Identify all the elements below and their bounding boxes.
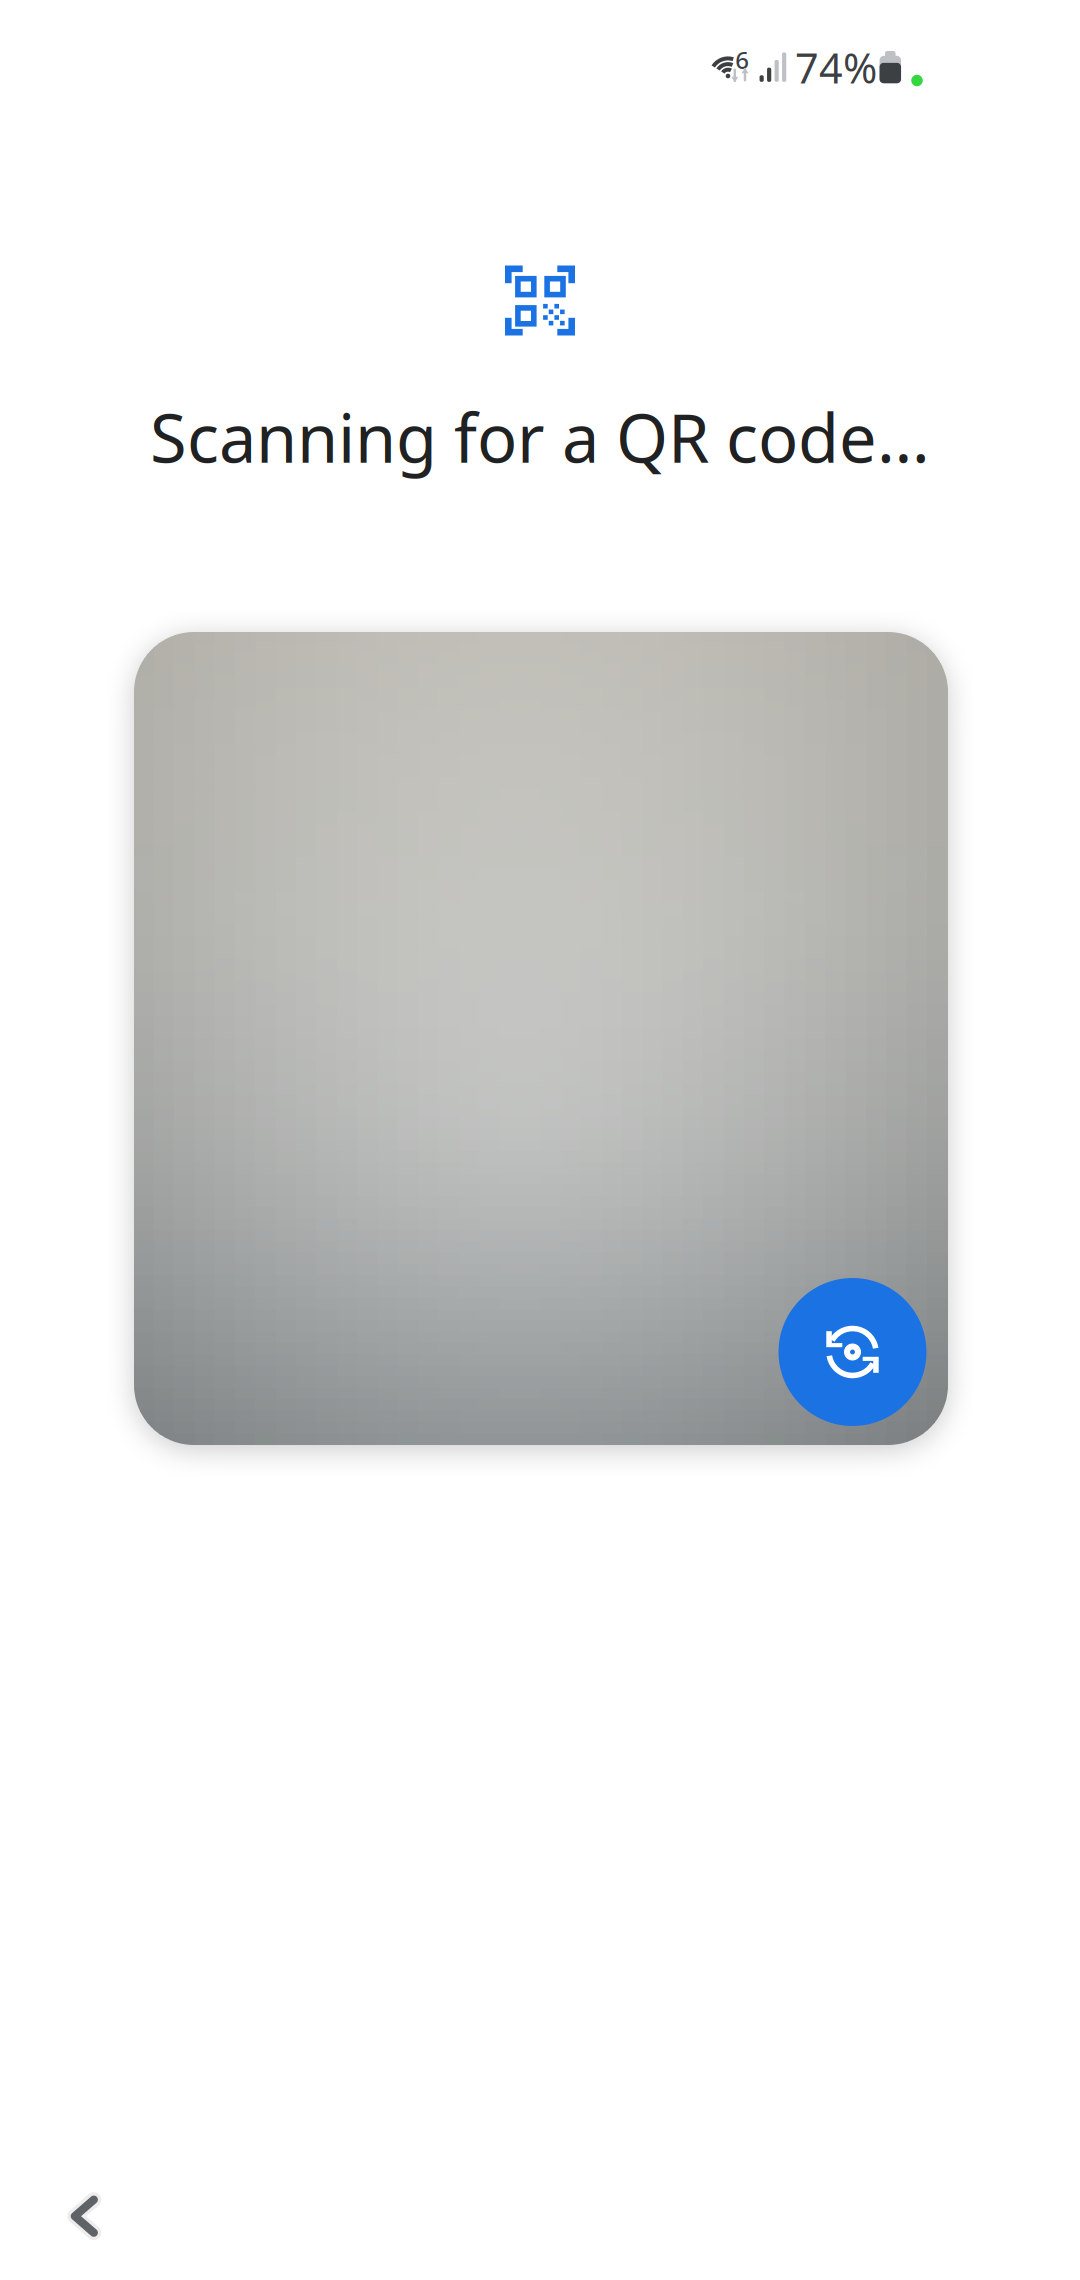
staticText: 6	[735, 44, 749, 76]
button[interactable]: Flip camera	[778, 1278, 926, 1426]
button[interactable]: Back	[36, 2161, 132, 2271]
staticText: Scanning for a QR code…	[150, 393, 930, 481]
staticText: 74%	[795, 40, 877, 95]
